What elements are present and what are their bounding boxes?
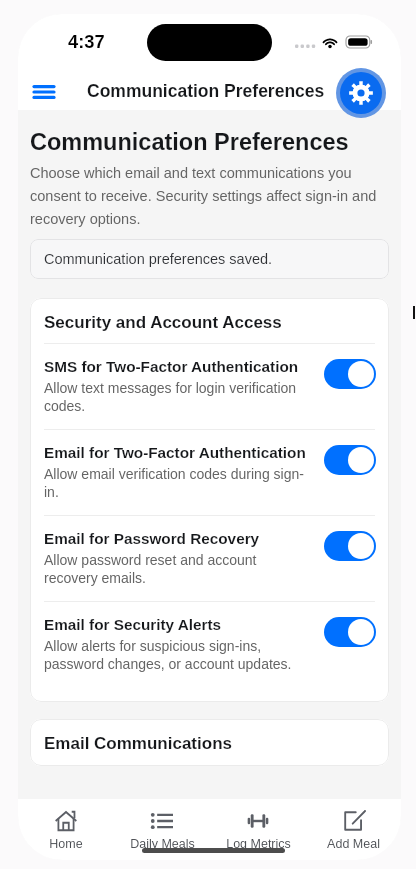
staticText: Email Communications [44, 734, 232, 753]
staticText: Email for Password Recovery [44, 530, 260, 547]
button[interactable]: Log Metrics [210, 810, 306, 851]
staticText: Communication Preferences [87, 81, 325, 101]
button[interactable]: Daily Meals [114, 810, 210, 851]
staticText: SMS for Two-Factor Authentication [44, 358, 299, 375]
staticText: Choose which email and text communicatio… [30, 165, 389, 228]
button[interactable]: Add Meal [306, 810, 401, 851]
button[interactable]: Email for Security Alerts [30, 602, 389, 687]
staticText: Daily Meals [130, 837, 195, 851]
staticText: Communication preferences saved. [44, 251, 273, 267]
staticText: Allow password reset and account recover… [44, 552, 314, 586]
staticText: Allow text messages for login verificati… [44, 380, 314, 414]
button[interactable] [324, 359, 376, 389]
staticText: Log Metrics [226, 837, 291, 851]
staticText: Allow alerts for suspicious sign-ins, pa… [44, 638, 314, 672]
button[interactable]: Email for Two-Factor Authentication [30, 430, 389, 516]
staticText: Home [49, 837, 83, 851]
staticText: Add Meal [327, 837, 380, 851]
button[interactable]: SMS for Two-Factor Authentication [30, 344, 389, 430]
staticText: Email for Two-Factor Authentication [44, 444, 306, 461]
button[interactable]: Settings [340, 72, 382, 114]
staticText: Communication Preferences [30, 129, 349, 155]
button[interactable] [324, 617, 376, 647]
button[interactable]: Email for Password Recovery [30, 516, 389, 602]
staticText: Email for Security Alerts [44, 616, 222, 633]
staticText: 4:37 [68, 31, 105, 51]
button[interactable]: Menu [26, 74, 62, 110]
staticText: Security and Account Access [44, 313, 282, 332]
button[interactable] [324, 531, 376, 561]
staticText: Allow email verification codes during si… [44, 466, 314, 500]
button[interactable]: Home [18, 810, 114, 851]
button[interactable] [324, 445, 376, 475]
